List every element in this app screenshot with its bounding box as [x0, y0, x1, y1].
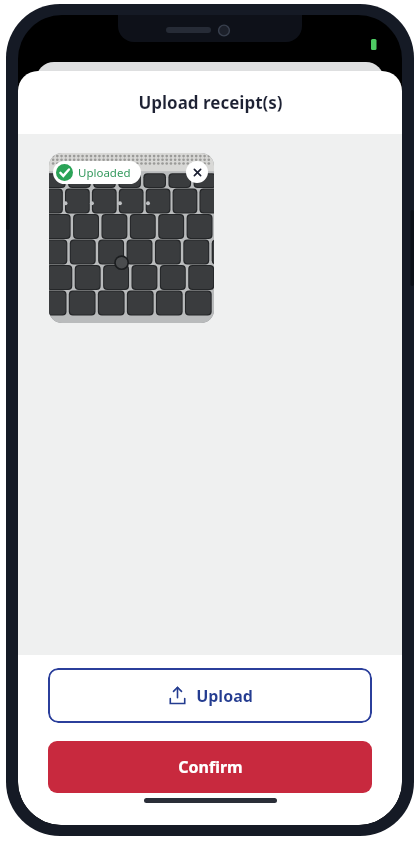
button[interactable]: Confirm [48, 741, 372, 793]
button[interactable]: Remove receipt [186, 161, 208, 183]
button[interactable]: Upload [48, 668, 372, 723]
staticText: Confirm [178, 756, 243, 778]
staticText: Upload receipt(s) [138, 91, 283, 114]
button[interactable]: Uploaded [49, 153, 214, 323]
staticText: Uploaded [78, 165, 131, 181]
staticText: Upload [196, 685, 253, 707]
